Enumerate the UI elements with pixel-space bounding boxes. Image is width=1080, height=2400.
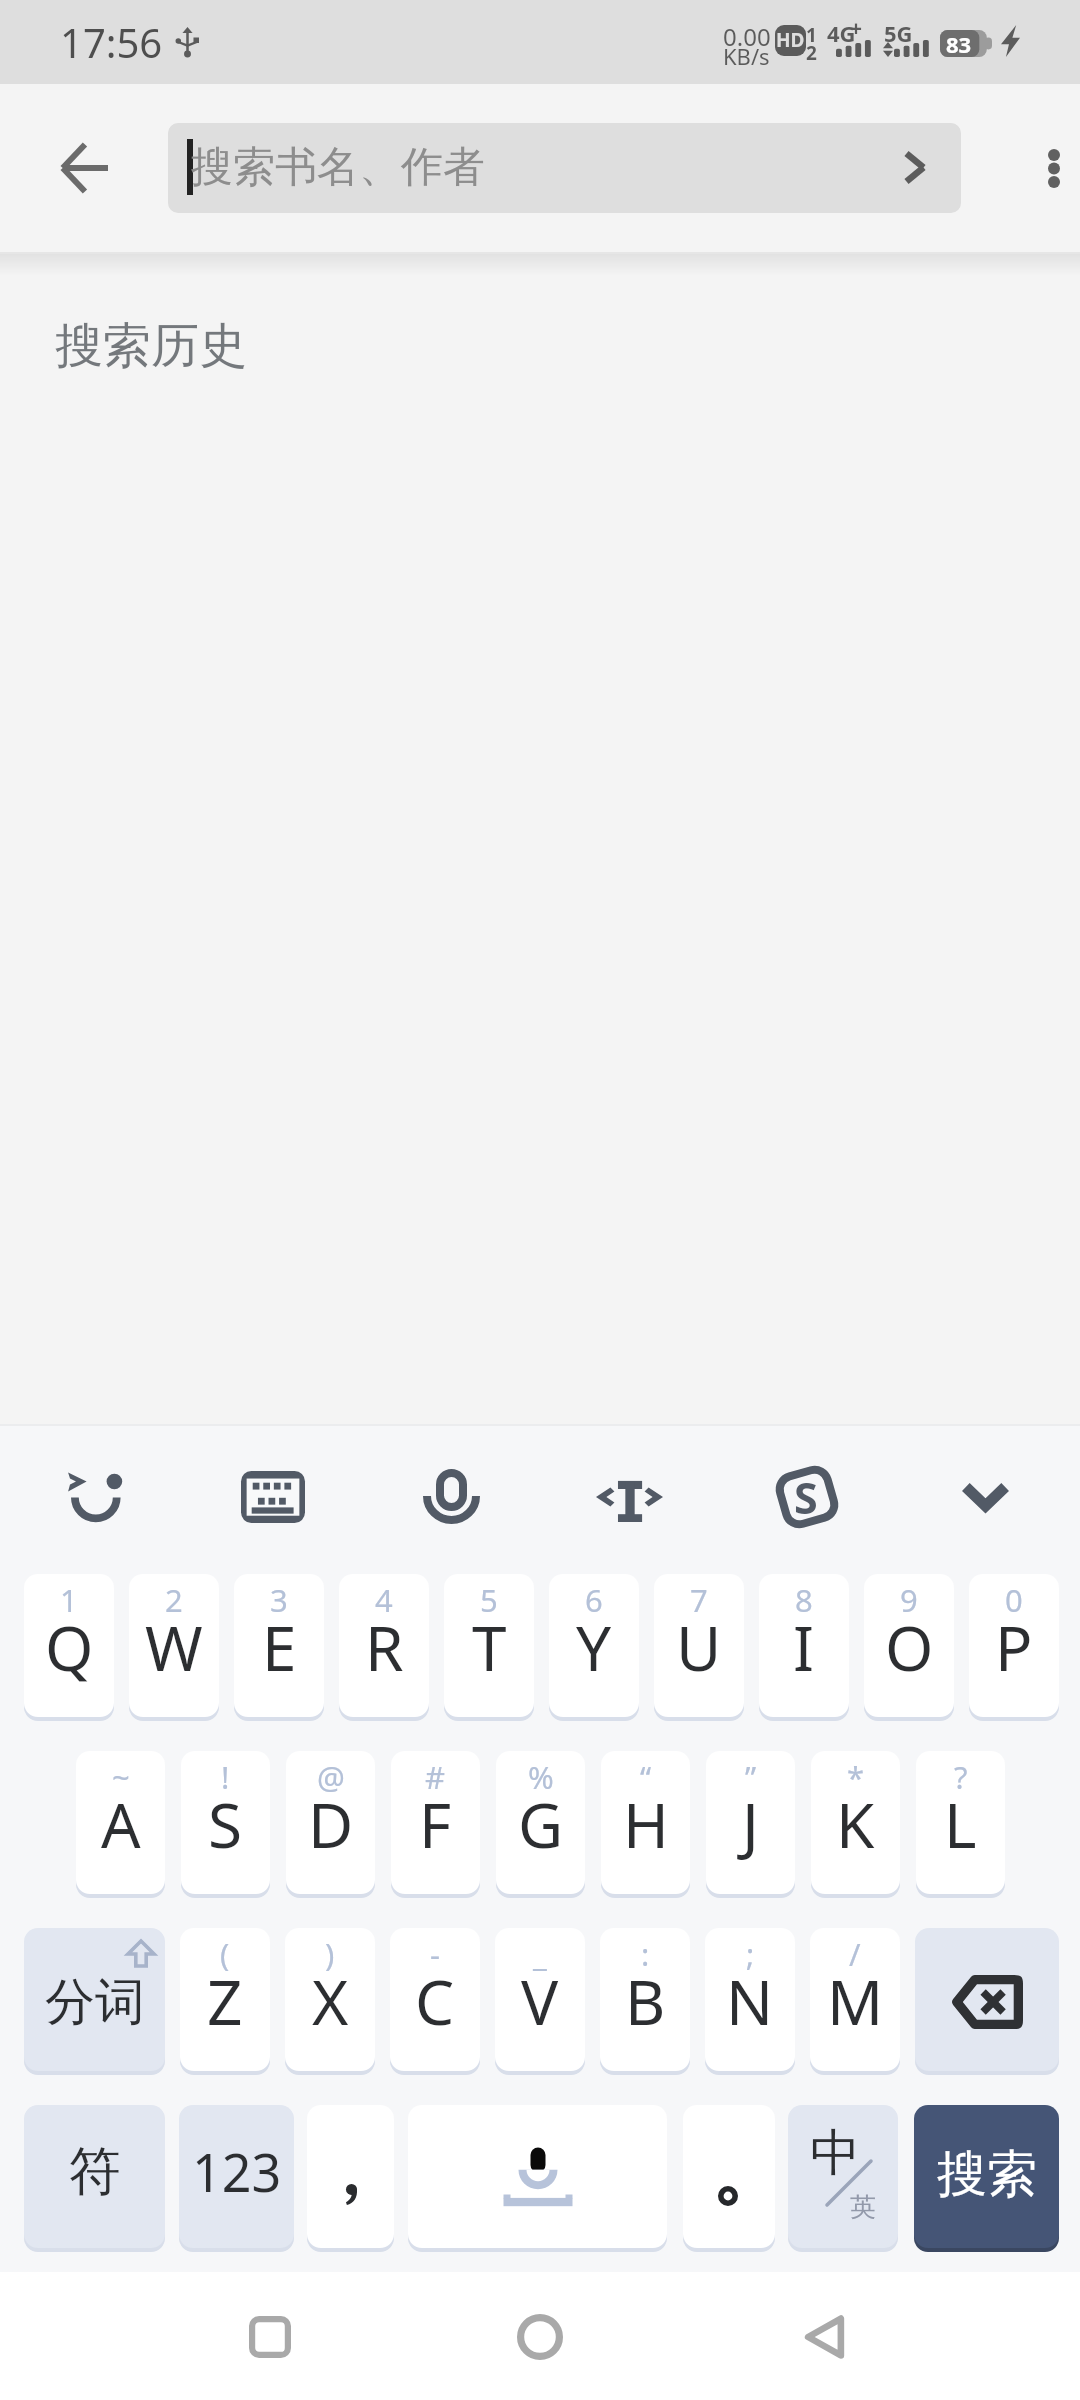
button[interactable]: 1 bbox=[24, 1574, 114, 1717]
button[interactable]: ~ bbox=[76, 1751, 165, 1894]
button[interactable]: Move cursor bbox=[584, 1453, 674, 1541]
button[interactable]: 分词 bbox=[24, 1928, 165, 2071]
staticText: 123 bbox=[192, 2136, 282, 2207]
button[interactable]: 7 bbox=[654, 1574, 744, 1717]
button[interactable]: ? bbox=[916, 1751, 1005, 1894]
staticText: G bbox=[518, 1782, 564, 1866]
button[interactable]: 4 bbox=[339, 1574, 429, 1717]
staticText: @ bbox=[317, 1756, 345, 1798]
button[interactable]: 2 bbox=[129, 1574, 219, 1717]
button[interactable]: Hide keyboard bbox=[940, 1453, 1030, 1541]
button[interactable]: Sogou settings bbox=[762, 1453, 852, 1541]
button[interactable]: More options bbox=[960, 84, 1080, 252]
button[interactable]: 0 bbox=[969, 1574, 1059, 1717]
staticText: Y bbox=[576, 1605, 612, 1689]
staticText: W bbox=[145, 1605, 203, 1689]
staticText: N bbox=[726, 1959, 774, 2043]
button[interactable]: 3 bbox=[234, 1574, 324, 1717]
staticText: 符 bbox=[69, 2139, 121, 2205]
staticText: HD bbox=[776, 27, 805, 53]
staticText: I bbox=[793, 1605, 815, 1689]
button[interactable]: Recent apps bbox=[210, 2277, 330, 2397]
staticText: 8 bbox=[795, 1579, 813, 1621]
staticText: 搜索历史 bbox=[55, 316, 247, 376]
button[interactable]: Emoji bbox=[50, 1453, 140, 1541]
button[interactable]: ( bbox=[180, 1928, 270, 2071]
button[interactable]: Home bbox=[480, 2277, 600, 2397]
button[interactable]: # bbox=[391, 1751, 480, 1894]
button[interactable]: @ bbox=[286, 1751, 375, 1894]
button[interactable]: % bbox=[496, 1751, 585, 1894]
staticText: ~ bbox=[112, 1756, 130, 1798]
staticText: 搜索书名、作者 bbox=[191, 141, 485, 194]
button[interactable]: 8 bbox=[759, 1574, 849, 1717]
button[interactable]: ! bbox=[181, 1751, 270, 1894]
button[interactable]: Space bbox=[408, 2105, 667, 2248]
button[interactable]: ; bbox=[705, 1928, 795, 2071]
staticText: 4 bbox=[375, 1579, 393, 1621]
button[interactable]: 123 bbox=[179, 2105, 294, 2248]
staticText: 9 bbox=[900, 1579, 918, 1621]
staticText: + bbox=[850, 14, 863, 43]
staticText: S bbox=[208, 1782, 243, 1866]
button[interactable]: 9 bbox=[864, 1574, 954, 1717]
button[interactable]: ) bbox=[285, 1928, 375, 2071]
button[interactable]: Back bbox=[764, 2277, 884, 2397]
staticText: 1 bbox=[60, 1579, 78, 1621]
staticText: “ bbox=[640, 1756, 652, 1798]
button[interactable]: 搜索书名、作者 bbox=[168, 123, 961, 213]
staticText: X bbox=[312, 1959, 349, 2043]
staticText: 83 bbox=[946, 29, 972, 56]
staticText: U bbox=[676, 1605, 722, 1689]
staticText: # bbox=[425, 1756, 446, 1798]
staticText: 7 bbox=[690, 1579, 708, 1621]
staticText: 3 bbox=[270, 1579, 288, 1621]
button[interactable]: / bbox=[810, 1928, 900, 2071]
staticText: 4G bbox=[827, 18, 856, 48]
button[interactable]: Voice input bbox=[406, 1453, 496, 1541]
staticText: A bbox=[101, 1782, 141, 1866]
staticText: ! bbox=[221, 1756, 230, 1798]
staticText: P bbox=[995, 1605, 1033, 1689]
staticText: 2 bbox=[165, 1579, 183, 1621]
button[interactable]: Switch keyboard bbox=[228, 1453, 318, 1541]
staticText: ) bbox=[325, 1933, 335, 1975]
button[interactable]: Period bbox=[683, 2105, 775, 2248]
staticText: ” bbox=[745, 1756, 757, 1798]
staticText: T bbox=[472, 1605, 507, 1689]
staticText: B bbox=[625, 1959, 666, 2043]
staticText: KB/s bbox=[723, 41, 770, 71]
button[interactable]: : bbox=[600, 1928, 690, 2071]
staticText: 中 bbox=[810, 2122, 860, 2185]
button[interactable]: 5 bbox=[444, 1574, 534, 1717]
button[interactable]: Back bbox=[0, 84, 168, 252]
staticText: * bbox=[847, 1756, 865, 1798]
staticText: % bbox=[528, 1756, 554, 1798]
button[interactable]: _ bbox=[495, 1928, 585, 2071]
staticText: 5G bbox=[884, 18, 913, 48]
staticText: E bbox=[262, 1605, 297, 1689]
staticText: 5 bbox=[480, 1579, 498, 1621]
staticText: S bbox=[794, 1468, 818, 1527]
staticText: F bbox=[419, 1782, 452, 1866]
staticText: _ bbox=[533, 1933, 547, 1975]
staticText: - bbox=[430, 1933, 440, 1975]
button[interactable]: 搜索 bbox=[914, 2105, 1059, 2248]
staticText: 17:56 bbox=[60, 15, 163, 69]
staticText: K bbox=[836, 1782, 875, 1866]
button[interactable]: “ bbox=[601, 1751, 690, 1894]
button[interactable]: * bbox=[811, 1751, 900, 1894]
button[interactable]: Switch Chinese English bbox=[788, 2105, 898, 2248]
staticText: : bbox=[641, 1933, 650, 1975]
button[interactable]: - bbox=[390, 1928, 480, 2071]
staticText: M bbox=[827, 1959, 884, 2043]
staticText: ? bbox=[954, 1756, 968, 1798]
button[interactable]: 符 bbox=[24, 2105, 165, 2248]
button[interactable]: ” bbox=[706, 1751, 795, 1894]
button[interactable]: Backspace bbox=[915, 1928, 1059, 2071]
staticText: 0.00 bbox=[723, 20, 771, 53]
staticText: 1 bbox=[806, 22, 817, 48]
button[interactable]: 6 bbox=[549, 1574, 639, 1717]
staticText: 6 bbox=[585, 1579, 603, 1621]
button[interactable]: Comma bbox=[307, 2105, 394, 2248]
